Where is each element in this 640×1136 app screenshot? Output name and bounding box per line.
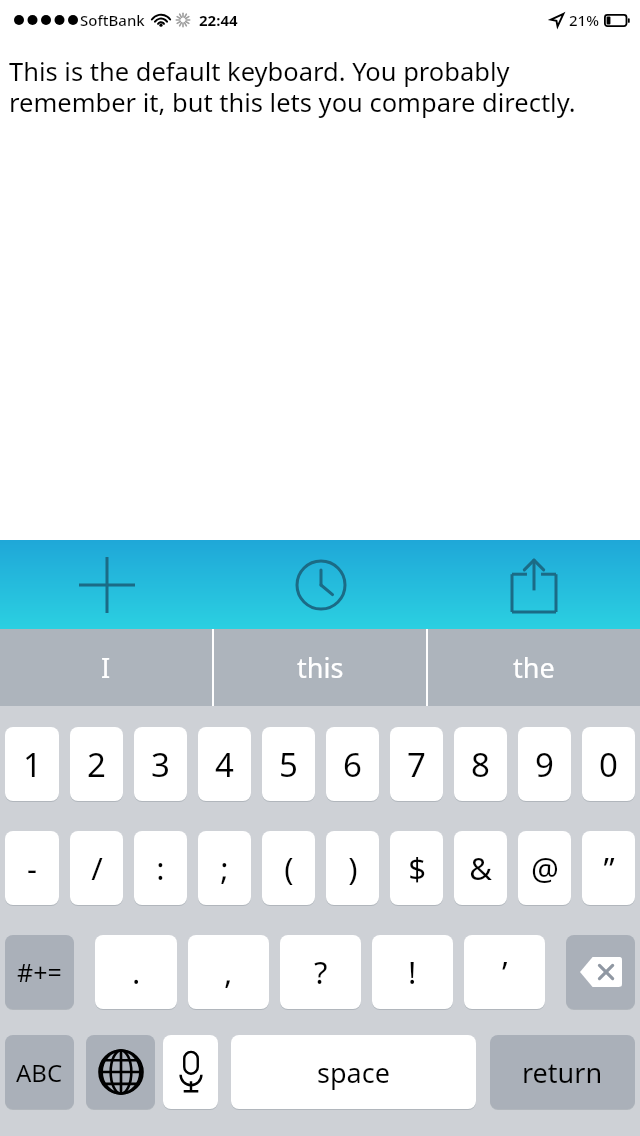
button[interactable]: 5	[262, 727, 315, 801]
button[interactable]: I	[0, 629, 212, 706]
button[interactable]: ?	[280, 935, 361, 1009]
staticText: #+=	[17, 955, 62, 989]
button[interactable]: ’	[464, 935, 545, 1009]
staticText: space	[317, 1054, 390, 1091]
button[interactable]: ABC	[5, 1035, 74, 1109]
button[interactable]: #+=	[5, 935, 74, 1009]
other: Backspace	[566, 935, 635, 1010]
button[interactable]: 9	[518, 727, 571, 801]
staticText: return	[522, 1054, 603, 1091]
button[interactable]: 1	[5, 727, 59, 801]
staticText: ’	[502, 951, 508, 993]
button[interactable]: Share	[427, 540, 640, 629]
button[interactable]: Recent	[214, 540, 427, 629]
staticText: I	[101, 649, 111, 686]
button[interactable]: 7	[390, 727, 443, 801]
staticText: 8	[471, 742, 490, 787]
staticText: ;	[220, 847, 229, 889]
button[interactable]: (	[262, 831, 315, 905]
staticText: the	[513, 649, 555, 686]
staticText: )	[348, 847, 358, 889]
button[interactable]: @	[518, 831, 571, 905]
staticText: /	[91, 847, 103, 889]
button[interactable]: 0	[582, 727, 635, 801]
staticText: 7	[407, 742, 426, 787]
staticText: SoftBank	[80, 10, 145, 30]
staticText: &	[469, 847, 492, 889]
staticText: 4	[215, 742, 234, 787]
button[interactable]: 6	[326, 727, 379, 801]
button[interactable]: 2	[70, 727, 123, 801]
button[interactable]: ;	[198, 831, 251, 905]
button[interactable]	[163, 1035, 218, 1109]
staticText: ABC	[16, 1056, 63, 1089]
staticText: 22:44	[199, 10, 238, 30]
staticText: (	[284, 847, 294, 889]
staticText: 6	[343, 742, 362, 787]
staticText: This is the default keyboard. You probab…	[9, 54, 631, 120]
staticText: @	[531, 847, 559, 889]
staticText: 9	[535, 742, 554, 787]
button[interactable]: :	[134, 831, 187, 905]
staticText: ”	[603, 847, 615, 889]
staticText: !	[408, 951, 417, 993]
button[interactable]	[86, 1035, 155, 1109]
other: Dictate	[163, 1035, 218, 1110]
button[interactable]: $	[390, 831, 443, 905]
button[interactable]: 3	[134, 727, 187, 801]
staticText: 3	[151, 742, 170, 787]
button[interactable]: .	[95, 935, 177, 1009]
staticText: -	[27, 847, 37, 889]
button[interactable]: this	[214, 629, 426, 706]
staticText: 0	[599, 742, 618, 787]
button[interactable]: )	[326, 831, 379, 905]
staticText: this	[297, 649, 344, 686]
staticText: ?	[314, 951, 328, 993]
button[interactable]: ”	[582, 831, 635, 905]
button[interactable]: space	[231, 1035, 476, 1109]
button[interactable]: /	[70, 831, 123, 905]
button[interactable]	[566, 935, 635, 1009]
staticText: :	[156, 847, 165, 889]
staticText: 21%	[569, 10, 599, 30]
staticText: $	[408, 847, 426, 889]
button[interactable]: ,	[188, 935, 269, 1009]
button[interactable]: -	[5, 831, 59, 905]
button[interactable]: Add	[0, 540, 213, 629]
button[interactable]: 4	[198, 727, 251, 801]
button[interactable]: !	[372, 935, 453, 1009]
button[interactable]: the	[428, 629, 640, 706]
staticText: .	[132, 951, 141, 993]
button[interactable]: 8	[454, 727, 507, 801]
other: Change keyboard	[86, 1035, 155, 1110]
staticText: 2	[87, 742, 106, 787]
staticText: ,	[224, 951, 233, 993]
staticText: 1	[23, 742, 42, 787]
button[interactable]: return	[490, 1035, 635, 1109]
button[interactable]: &	[454, 831, 507, 905]
staticText: 5	[279, 742, 298, 787]
